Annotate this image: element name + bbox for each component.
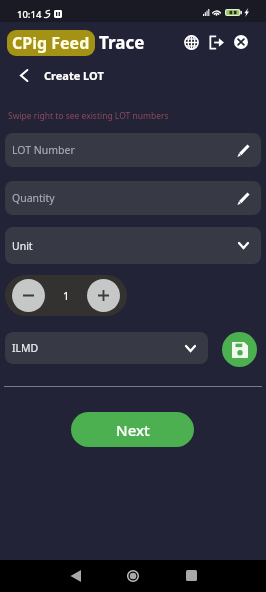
staticText: ILMD	[12, 341, 39, 355]
staticText: 10:14	[17, 8, 42, 21]
staticText: LOT Number	[12, 143, 75, 157]
staticText: Trace	[99, 31, 145, 54]
button[interactable]: Logout	[205, 31, 227, 53]
button[interactable]: CPig Feed	[7, 30, 95, 56]
staticText: Swipe right to see existing LOT numbers	[8, 110, 169, 122]
button[interactable]: LOT Number	[5, 133, 261, 167]
button[interactable]: Language	[180, 31, 202, 53]
button[interactable]: Save	[222, 332, 257, 367]
button[interactable]: Unit	[5, 227, 261, 264]
staticText: 1	[63, 288, 70, 303]
button[interactable]: ILMD	[5, 332, 208, 364]
staticText: Next	[116, 420, 150, 440]
staticText: Unit	[12, 239, 33, 253]
button[interactable]: Close	[230, 31, 252, 53]
button[interactable]: Back	[62, 562, 89, 589]
button[interactable]: Recents	[178, 562, 205, 589]
button[interactable]: Increase	[87, 279, 120, 312]
staticText: Quantity	[12, 191, 55, 205]
button[interactable]: Back	[13, 64, 35, 86]
button[interactable]: Home	[119, 562, 146, 589]
button[interactable]: Decrease	[12, 279, 45, 312]
button[interactable]: Next	[71, 412, 194, 447]
staticText: Create LOT	[44, 68, 104, 83]
staticText: CPig Feed	[12, 32, 90, 54]
button[interactable]: Quantity	[5, 181, 261, 215]
